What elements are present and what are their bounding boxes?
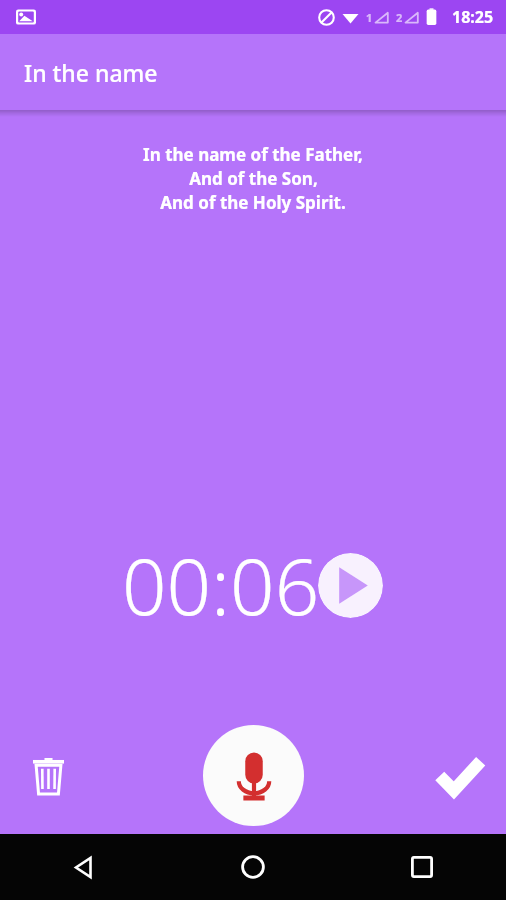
button[interactable]: Save bbox=[432, 748, 488, 804]
staticText: 1 bbox=[366, 10, 373, 25]
button[interactable]: Recent apps bbox=[337, 834, 506, 900]
button[interactable]: Play bbox=[318, 553, 383, 618]
button[interactable]: Home bbox=[168, 834, 337, 900]
button[interactable]: Back bbox=[0, 834, 168, 900]
staticText: 00:06 bbox=[122, 532, 320, 638]
staticText: In the name bbox=[24, 57, 158, 88]
button[interactable]: Record bbox=[203, 725, 304, 826]
staticText: In the name of the Father, bbox=[143, 143, 363, 166]
staticText: And of the Holy Spirit. bbox=[160, 191, 346, 214]
button[interactable]: Delete recording bbox=[20, 748, 76, 804]
staticText: 2 bbox=[396, 10, 403, 25]
staticText: And of the Son, bbox=[189, 167, 318, 190]
staticText: 18:25 bbox=[452, 6, 494, 28]
